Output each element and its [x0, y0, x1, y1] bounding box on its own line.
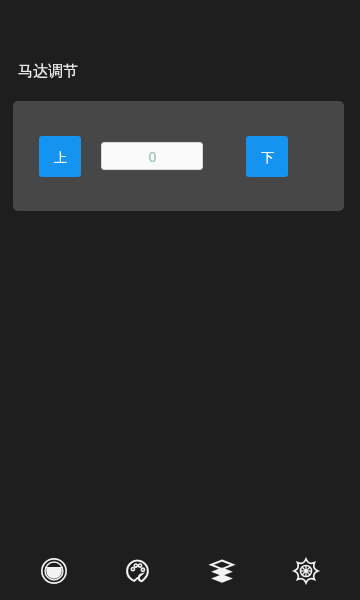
staticText: 下: [261, 149, 274, 165]
button[interactable]: Layers: [192, 545, 252, 597]
staticText: 0: [148, 147, 157, 166]
button[interactable]: 上: [39, 136, 81, 177]
button[interactable]: 下: [246, 136, 288, 177]
staticText: 马达调节: [18, 62, 78, 81]
button[interactable]: 0: [101, 142, 203, 170]
button[interactable]: Bowl: [24, 545, 84, 597]
staticText: 上: [54, 149, 67, 165]
button[interactable]: Settings: [276, 545, 336, 597]
button[interactable]: Palette: [108, 545, 168, 597]
